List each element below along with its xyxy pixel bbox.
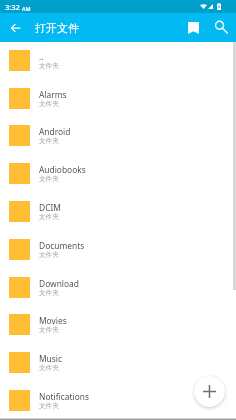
- staticText: 文件夹: [39, 289, 59, 297]
- staticText: 文件夹: [39, 402, 59, 410]
- staticText: 文件夹: [39, 175, 59, 183]
- staticText: 文件夹: [39, 137, 59, 145]
- staticText: DCIM: [39, 202, 61, 213]
- button[interactable]: Documents: [0, 230, 236, 268]
- staticText: ..: [39, 51, 44, 62]
- staticText: 打开文件: [35, 21, 79, 35]
- staticText: 3:32: [5, 2, 22, 12]
- button[interactable]: Download: [0, 268, 236, 306]
- staticText: 文件夹: [39, 364, 59, 372]
- staticText: 文件夹: [39, 251, 59, 259]
- button[interactable]: DCIM: [0, 192, 236, 230]
- button[interactable]: Android: [0, 116, 236, 154]
- staticText: Audiobooks: [39, 164, 86, 175]
- staticText: 文件夹: [39, 62, 59, 70]
- staticText: 文件夹: [39, 213, 59, 221]
- button[interactable]: Audiobooks: [0, 154, 236, 192]
- staticText: 文件夹: [39, 100, 59, 108]
- staticText: Download: [39, 278, 79, 289]
- button[interactable]: Add: [194, 376, 225, 407]
- button[interactable]: Search: [208, 13, 235, 42]
- button[interactable]: ..: [0, 41, 236, 79]
- button[interactable]: Back: [0, 13, 31, 42]
- staticText: 文件夹: [39, 326, 59, 334]
- button[interactable]: Notifications: [0, 381, 236, 419]
- button[interactable]: Music: [0, 343, 236, 381]
- button[interactable]: Alarms: [0, 79, 236, 117]
- staticText: Notifications: [39, 391, 89, 402]
- staticText: Android: [39, 126, 71, 137]
- staticText: AM: [22, 5, 31, 12]
- staticText: Documents: [39, 240, 85, 251]
- staticText: Alarms: [39, 89, 67, 100]
- button[interactable]: Movies: [0, 305, 236, 343]
- staticText: Movies: [39, 315, 67, 326]
- button[interactable]: Bookmarks: [179, 13, 208, 42]
- staticText: Music: [39, 353, 63, 364]
